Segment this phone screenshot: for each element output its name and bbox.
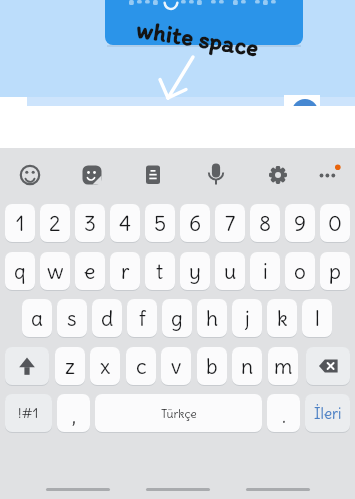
staticText: c <box>136 353 147 379</box>
button[interactable] <box>133 155 173 195</box>
button[interactable]: 0 <box>320 204 350 242</box>
staticText: y <box>189 258 201 284</box>
button[interactable] <box>10 155 50 195</box>
staticText: d <box>101 305 114 331</box>
staticText: p <box>329 258 341 284</box>
staticText: 0 <box>328 210 342 236</box>
staticText: n <box>241 353 254 379</box>
staticText: Türkçe <box>161 406 197 421</box>
button[interactable] <box>196 155 236 195</box>
staticText: z <box>65 353 76 379</box>
staticText: m <box>274 353 293 379</box>
staticText: q <box>14 258 26 284</box>
staticText: u <box>224 258 237 284</box>
staticText: 6 <box>189 210 202 236</box>
staticText: h <box>206 305 219 331</box>
button[interactable]: z <box>55 347 85 385</box>
button[interactable]: e <box>75 252 105 290</box>
button[interactable] <box>5 347 49 385</box>
button[interactable]: j <box>232 299 262 337</box>
staticText: 5 <box>154 210 167 236</box>
staticText: g <box>171 305 183 331</box>
button[interactable]: 7 <box>215 204 245 242</box>
staticText: 3 <box>84 210 96 236</box>
button[interactable]: !#1 <box>5 394 52 432</box>
staticText: 2 <box>49 210 61 236</box>
button[interactable]: w <box>40 252 70 290</box>
button[interactable] <box>72 155 112 195</box>
button[interactable]: q <box>5 252 35 290</box>
staticText: r <box>121 258 130 284</box>
button[interactable]: c <box>126 347 156 385</box>
staticText: v <box>171 353 182 379</box>
button[interactable]: n <box>232 347 262 385</box>
staticText: o <box>294 258 306 284</box>
staticText: , <box>72 404 76 428</box>
button[interactable]: , <box>57 394 90 432</box>
button[interactable] <box>308 155 348 195</box>
button[interactable]: o <box>285 252 315 290</box>
staticText: İleri <box>314 404 342 423</box>
button[interactable] <box>258 155 298 195</box>
button[interactable]: 8 <box>250 204 280 242</box>
button[interactable]: r <box>110 252 140 290</box>
staticText: 7 <box>225 210 236 236</box>
button[interactable]: m <box>268 347 298 385</box>
staticText: b <box>206 353 218 379</box>
staticText: 4 <box>119 210 132 236</box>
button[interactable]: b <box>197 347 227 385</box>
button[interactable]: 6 <box>180 204 210 242</box>
button[interactable]: g <box>162 299 192 337</box>
staticText: x <box>100 353 111 379</box>
staticText: j <box>245 305 250 331</box>
button[interactable]: İleri <box>305 394 350 432</box>
button[interactable]: 4 <box>110 204 140 242</box>
button[interactable]: k <box>267 299 297 337</box>
button[interactable]: y <box>180 252 210 290</box>
staticText: k <box>277 305 288 331</box>
button[interactable]: 2 <box>40 204 70 242</box>
button[interactable]: a <box>22 299 52 337</box>
staticText: 9 <box>294 210 307 236</box>
staticText: white space <box>134 13 262 62</box>
staticText: e <box>84 258 96 284</box>
button[interactable]: d <box>92 299 122 337</box>
staticText: 1 <box>16 210 25 236</box>
staticText: w <box>47 258 64 284</box>
staticText: s <box>67 305 77 331</box>
staticText: l <box>315 305 320 331</box>
button[interactable]: t <box>145 252 175 290</box>
staticText: !#1 <box>18 404 39 422</box>
button[interactable]: h <box>197 299 227 337</box>
button[interactable]: 9 <box>285 204 315 242</box>
button[interactable]: 3 <box>75 204 105 242</box>
button[interactable]: 1 <box>5 204 35 242</box>
staticText: t <box>156 258 164 284</box>
staticText: a <box>31 305 43 331</box>
staticText: f <box>139 305 146 331</box>
button[interactable]: i <box>250 252 280 290</box>
button[interactable]: f <box>127 299 157 337</box>
button[interactable]: Türkçe <box>95 394 262 432</box>
button[interactable]: 5 <box>145 204 175 242</box>
button[interactable] <box>105 0 303 45</box>
staticText: i <box>263 258 268 284</box>
staticText: . <box>282 404 286 428</box>
button[interactable]: l <box>302 299 332 337</box>
staticText: 8 <box>259 210 272 236</box>
button[interactable]: u <box>215 252 245 290</box>
button[interactable]: p <box>320 252 350 290</box>
button[interactable]: v <box>161 347 191 385</box>
button[interactable]: s <box>57 299 87 337</box>
button[interactable]: . <box>267 394 300 432</box>
button[interactable]: x <box>90 347 120 385</box>
button[interactable] <box>306 347 350 385</box>
